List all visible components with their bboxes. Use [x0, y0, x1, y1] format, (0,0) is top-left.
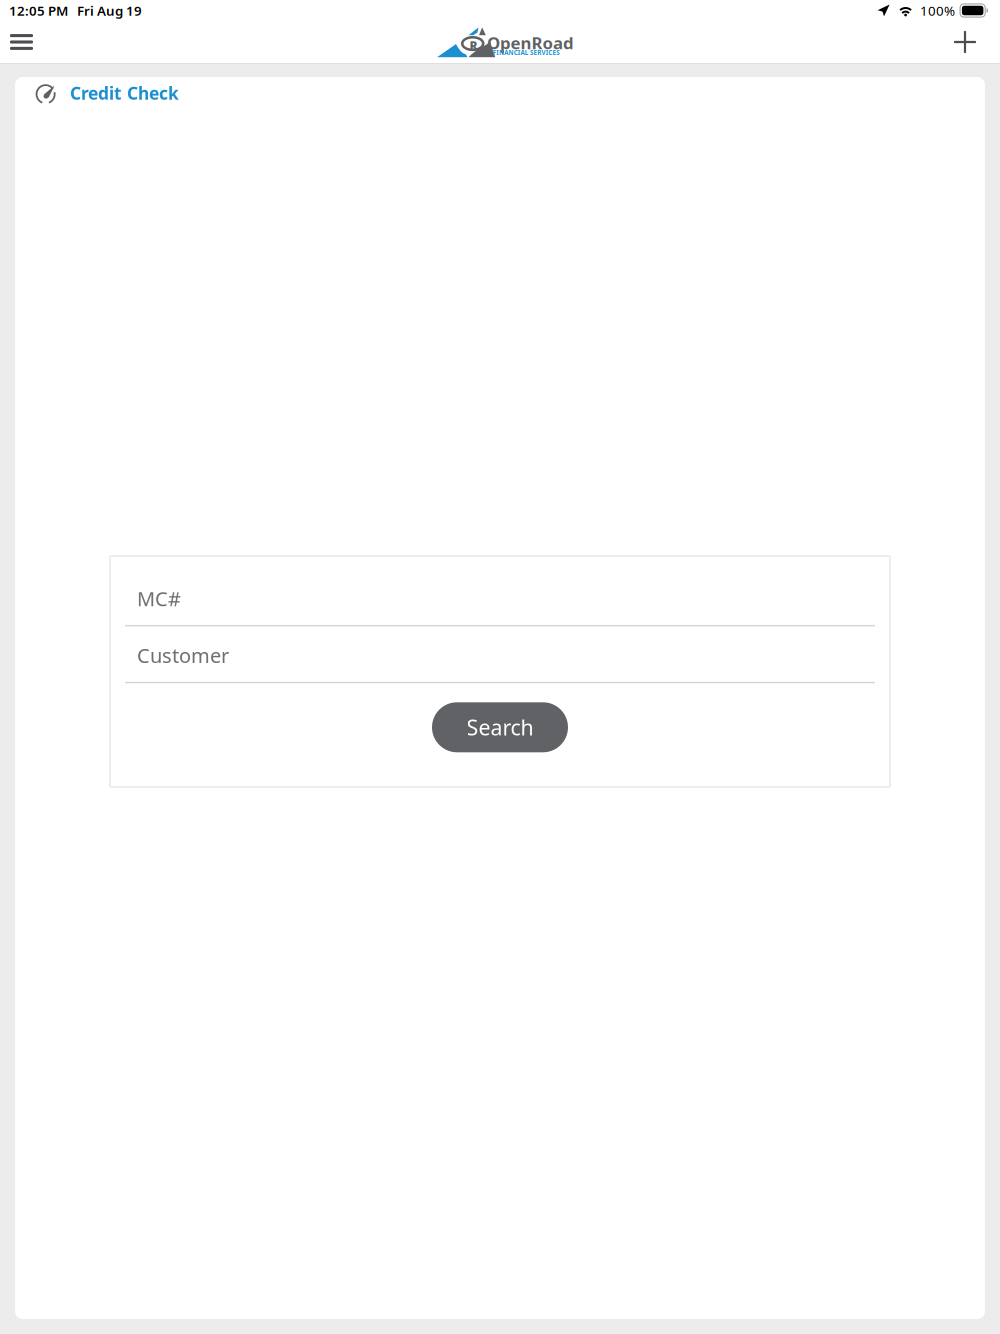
staticText: Search — [466, 713, 533, 741]
staticText: OpenRoad — [475, 22, 640, 64]
button[interactable]: Add — [937, 21, 1000, 63]
staticText: Fri Aug 19 — [77, 2, 142, 19]
staticText: Credit Check — [70, 81, 179, 104]
button[interactable]: Menu — [0, 22, 47, 62]
staticText: 100% — [920, 2, 955, 19]
staticText: MC# — [137, 585, 181, 612]
staticText: R — [442, 34, 457, 64]
staticText: FINANCIAL SERVICES — [486, 54, 614, 70]
staticText: 12:05 PM — [9, 2, 68, 19]
button[interactable]: Search — [432, 702, 568, 752]
staticText: Customer — [137, 642, 229, 668]
